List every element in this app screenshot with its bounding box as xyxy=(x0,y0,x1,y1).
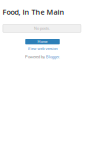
staticText: . xyxy=(59,55,60,59)
staticText: Home xyxy=(37,39,47,44)
button[interactable]: Blogger xyxy=(46,55,59,59)
staticText: View web version xyxy=(27,47,57,51)
button[interactable]: View web version xyxy=(27,47,57,51)
staticText: Blogger xyxy=(46,55,59,59)
staticText: No posts. xyxy=(34,26,50,30)
button[interactable]: Home xyxy=(25,39,60,44)
staticText: Food, In The Main xyxy=(2,7,64,17)
staticText: Powered by xyxy=(25,55,46,59)
